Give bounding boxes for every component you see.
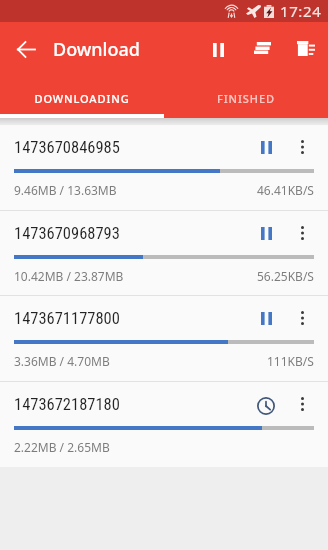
- button[interactable]: More options: [286, 302, 318, 334]
- button[interactable]: DOWNLOADING: [0, 78, 164, 118]
- button[interactable]: 1473670968793: [0, 211, 328, 295]
- staticText: 1473670968793: [14, 224, 120, 243]
- staticText: 10.42MB / 23.87MB: [14, 268, 124, 284]
- staticText: 46.41KB/S: [257, 182, 314, 198]
- button[interactable]: Pending: [250, 390, 282, 422]
- button[interactable]: Back: [8, 31, 44, 67]
- staticText: FINISHED: [217, 91, 275, 106]
- button[interactable]: 1473672187180: [0, 382, 328, 467]
- staticText: DOWNLOADING: [34, 91, 130, 106]
- button[interactable]: Pause: [250, 302, 282, 334]
- staticText: Download: [53, 37, 140, 62]
- button[interactable]: Pause: [250, 131, 282, 163]
- button[interactable]: More options: [286, 217, 318, 249]
- staticText: 17:24: [280, 1, 322, 21]
- button[interactable]: More options: [286, 131, 318, 163]
- staticText: 1473672187180: [14, 395, 120, 414]
- button[interactable]: Sort: [244, 29, 281, 66]
- staticText: 1473670846985: [14, 138, 120, 157]
- button[interactable]: More options: [286, 388, 318, 420]
- button[interactable]: 1473670846985: [0, 125, 328, 210]
- staticText: 3.36MB / 4.70MB: [14, 353, 110, 369]
- staticText: 111KB/S: [267, 353, 314, 369]
- staticText: 56.25KB/S: [257, 268, 314, 284]
- button[interactable]: FINISHED: [164, 78, 328, 118]
- button[interactable]: 1473671177800: [0, 296, 328, 381]
- button[interactable]: Pause: [250, 217, 282, 249]
- staticText: 2.22MB / 2.65MB: [14, 439, 110, 455]
- button[interactable]: Delete: [287, 30, 324, 67]
- staticText: 9.46MB / 13.63MB: [14, 182, 117, 198]
- staticText: 1473671177800: [14, 309, 120, 328]
- button[interactable]: Pause all: [200, 31, 237, 68]
